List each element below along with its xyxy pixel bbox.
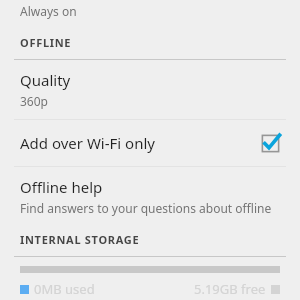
other: Add over Wi-Fi only [261,134,280,153]
staticText: Find answers to your questions about off… [20,200,272,216]
button[interactable]: Offline help [0,167,300,226]
staticText: Offline help [20,177,103,197]
staticText: 5.19GB free [194,280,266,298]
staticText: OFFLINE [20,35,72,50]
button[interactable]: Add over Wi-Fi only [0,120,300,166]
staticText: 360p [20,93,48,109]
staticText: Always on [20,3,77,19]
staticText: Add over Wi-Fi only [20,133,155,153]
staticText: Quality [20,70,71,90]
button[interactable]: Quality [0,60,300,119]
staticText: 0MB used [34,280,95,298]
staticText: INTERNAL STORAGE [20,232,140,247]
